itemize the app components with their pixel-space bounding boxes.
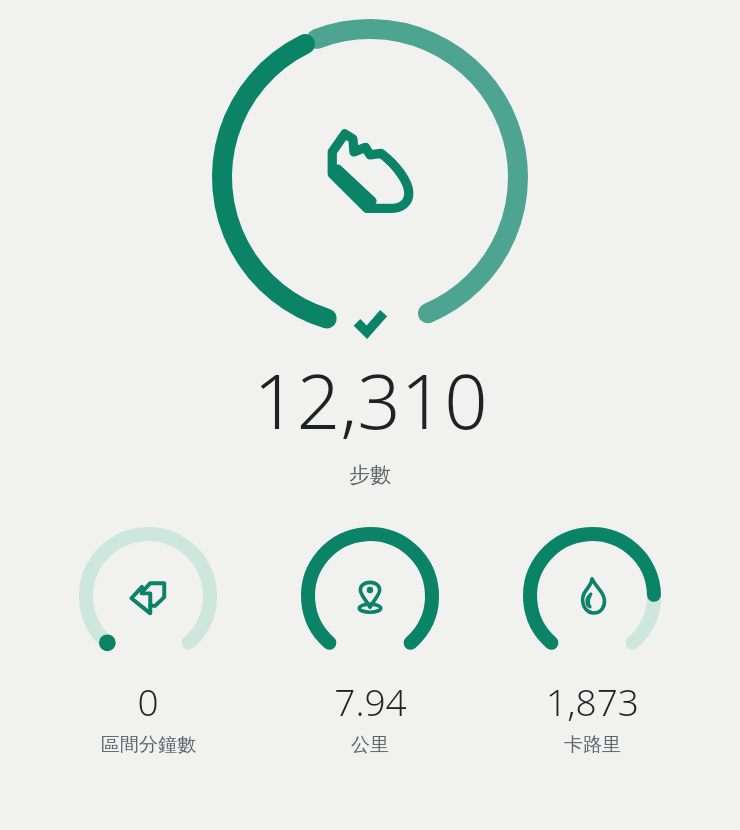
other: 公里 xyxy=(296,522,444,670)
other: 卡路里 xyxy=(518,522,666,670)
staticText: 卡路里 xyxy=(564,733,621,757)
button[interactable]: 區間分鐘數 xyxy=(74,522,222,757)
staticText: 0 xyxy=(137,676,159,726)
staticText: 1,873 xyxy=(546,676,639,726)
staticText: 公里 xyxy=(351,733,389,757)
button[interactable]: 公里 xyxy=(296,522,444,757)
staticText: 12,310 xyxy=(253,348,488,452)
staticText: 7.94 xyxy=(334,676,407,726)
button[interactable]: 步數 12,310 xyxy=(205,12,535,342)
staticText: 區間分鐘數 xyxy=(101,733,196,757)
button[interactable]: 卡路里 xyxy=(518,522,666,757)
other: 區間分鐘數 xyxy=(74,522,222,670)
staticText: 步數 xyxy=(349,462,391,488)
